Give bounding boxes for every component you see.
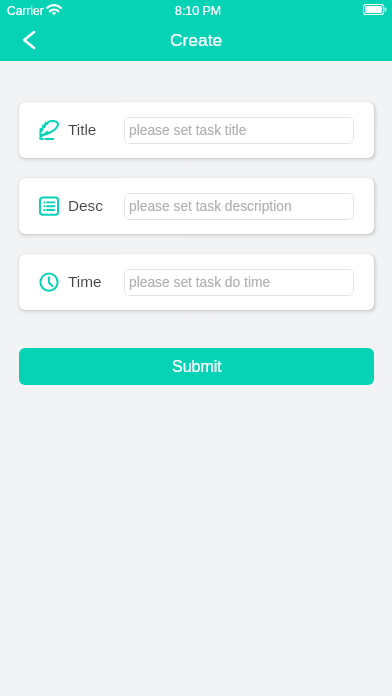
button[interactable]: please set task do time bbox=[124, 269, 354, 296]
staticText: please set task description bbox=[129, 199, 292, 214]
staticText: 8:10 PM bbox=[175, 4, 222, 18]
staticText: Carrier bbox=[7, 4, 44, 17]
staticText: Submit bbox=[172, 358, 222, 376]
staticText: please set task do time bbox=[129, 275, 271, 290]
button[interactable]: Back bbox=[6, 23, 50, 57]
staticText: please set task title bbox=[129, 123, 247, 138]
other: Battery full bbox=[363, 4, 387, 15]
staticText: Desc bbox=[68, 197, 103, 214]
staticText: Time bbox=[68, 273, 102, 290]
button[interactable]: please set task description bbox=[124, 193, 354, 220]
staticText: Create bbox=[170, 30, 223, 49]
button[interactable]: Desc bbox=[19, 178, 374, 234]
button[interactable]: please set task title bbox=[124, 117, 354, 144]
button[interactable]: Submit bbox=[19, 348, 374, 385]
other: Wi-Fi signal bbox=[46, 3, 62, 16]
button[interactable]: Title bbox=[19, 102, 374, 158]
staticText: Title bbox=[68, 121, 97, 138]
button[interactable]: Time bbox=[19, 254, 374, 310]
